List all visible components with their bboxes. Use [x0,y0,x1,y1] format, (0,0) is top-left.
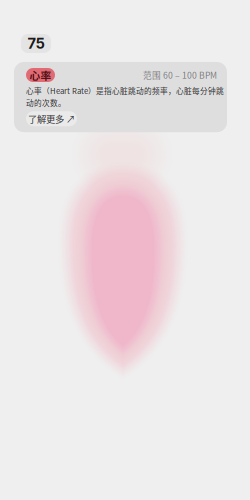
staticText: 范围 60 – 100 BPM [143,69,217,81]
staticText: 了解更多 ↗ [28,112,75,125]
staticText: 动的次数。 [26,97,66,108]
staticText: 75 [27,35,44,52]
staticText: 心率 [29,67,51,83]
staticText: 心率（Heart Rate）是指心脏跳动的频率，心脏每分钟跳 [26,85,224,96]
button[interactable]: 75 [21,34,51,53]
button[interactable]: 了解更多 ↗ [26,111,77,126]
